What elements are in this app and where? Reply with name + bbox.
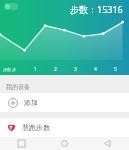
button[interactable]: Home bbox=[43, 137, 86, 150]
staticText: 3 bbox=[74, 66, 77, 73]
button[interactable]: Recents bbox=[0, 137, 43, 150]
staticText: 4 bbox=[94, 66, 97, 73]
button[interactable]: 添加 bbox=[0, 93, 129, 112]
staticText: 5 bbox=[114, 66, 117, 73]
staticText: 慧跑步数 bbox=[22, 123, 50, 132]
other: 慧跑步数 bbox=[6, 122, 17, 133]
staticText: 步数 步 bbox=[3, 67, 25, 72]
staticText: 步数：15316 bbox=[70, 3, 123, 15]
staticText: 添加 bbox=[24, 98, 38, 107]
button[interactable]: Back bbox=[86, 137, 129, 150]
staticText: 1 bbox=[34, 66, 37, 73]
staticText: 我的设备 bbox=[6, 83, 30, 91]
staticText: 2 bbox=[54, 66, 57, 73]
button[interactable]: 慧跑步数 bbox=[0, 118, 129, 137]
